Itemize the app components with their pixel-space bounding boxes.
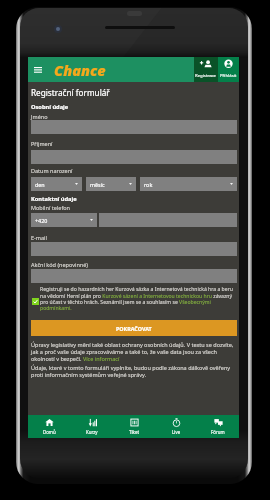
staticText: Tiket xyxy=(129,429,139,435)
button[interactable]: Tiket xyxy=(113,415,155,438)
staticText: +420 xyxy=(35,217,48,224)
staticText: Registruji se do hazardních her Kurzová … xyxy=(40,286,237,311)
button[interactable]: rok xyxy=(140,177,237,191)
staticText: Úpravy legislativy mění také oblast ochr… xyxy=(31,341,237,362)
staticText: Akční kód (nepovinné) xyxy=(31,261,88,268)
button[interactable]: měsíc xyxy=(86,177,136,191)
staticText: Přihlásit xyxy=(220,72,237,78)
button[interactable]: +420 xyxy=(31,213,97,227)
staticText: Příjmení xyxy=(31,140,53,147)
staticText: Jméno xyxy=(31,113,48,120)
staticText: Mobilní telefon xyxy=(31,204,71,211)
button[interactable]: Domů xyxy=(28,415,71,438)
button[interactable]: Fórum xyxy=(197,415,239,438)
button[interactable]: Přihlásit xyxy=(218,57,239,82)
staticText: Domů xyxy=(43,429,56,435)
button[interactable]: Menu xyxy=(28,57,47,82)
button[interactable]: Kurzy xyxy=(71,415,113,438)
staticText: Datum narození xyxy=(31,167,73,174)
staticText: měsíc xyxy=(90,181,105,188)
staticText: E-mail xyxy=(31,234,47,241)
staticText: Osobní údaje xyxy=(31,103,69,111)
button[interactable]: Registruji se do hazardních her Kurzová … xyxy=(31,286,237,312)
staticText: Údaje, které v tomto formuláři vyplníte,… xyxy=(31,364,237,378)
staticText: Fórum xyxy=(211,429,225,435)
staticText: Kurzy xyxy=(86,429,98,435)
button[interactable]: Live xyxy=(155,415,197,438)
staticText: rok xyxy=(144,181,153,188)
staticText: Registrace xyxy=(195,72,217,78)
staticText: POKRAČOVAT xyxy=(116,325,152,332)
button[interactable]: POKRAČOVAT xyxy=(31,320,237,336)
staticText: Chance xyxy=(54,60,106,80)
button[interactable]: den xyxy=(31,177,82,191)
button[interactable]: Registrace xyxy=(194,57,218,82)
staticText: den xyxy=(35,181,45,188)
staticText: Registrační formulář xyxy=(31,87,110,98)
staticText: Kontaktní údaje xyxy=(31,195,77,203)
staticText: Live xyxy=(172,429,181,435)
